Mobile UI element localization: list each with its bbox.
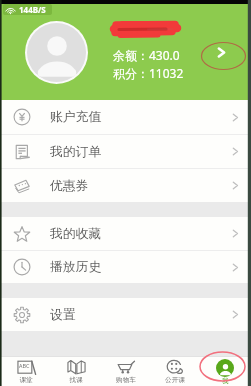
staticText: 设置 — [50, 307, 76, 323]
staticText: ABC — [19, 362, 30, 369]
button[interactable]: 设置 — [0, 298, 251, 331]
staticText: 我 — [222, 377, 229, 385]
button[interactable]: 播放历史 — [0, 251, 251, 283]
staticText: 144B/S — [19, 4, 46, 15]
staticText: 账户充值 — [50, 109, 102, 125]
button[interactable]: 找课 — [52, 358, 100, 384]
staticText: 购物车 — [116, 376, 136, 384]
staticText: 播放历史 — [50, 259, 102, 275]
button[interactable]: 优惠券 — [0, 169, 251, 202]
button[interactable]: Account details — [205, 36, 237, 68]
staticText: 公开课 — [165, 376, 185, 384]
button[interactable]: 购物车 — [102, 358, 150, 384]
button[interactable]: ABC — [2, 358, 50, 384]
staticText: 积分：11032 — [113, 65, 184, 81]
staticText: 我的收藏 — [50, 226, 102, 242]
button[interactable]: 我 — [201, 357, 249, 385]
button[interactable]: 公开课 — [151, 358, 199, 384]
staticText: 优惠券 — [50, 178, 89, 194]
staticText: 我的订单 — [50, 144, 102, 160]
staticText: 找课 — [69, 376, 83, 384]
staticText: 课堂 — [19, 376, 33, 384]
button[interactable]: 我的订单 — [0, 135, 251, 168]
staticText: 余额：430.0 — [113, 47, 180, 63]
button[interactable]: 账户充值 — [0, 100, 251, 134]
button[interactable]: 我的收藏 — [0, 217, 251, 250]
